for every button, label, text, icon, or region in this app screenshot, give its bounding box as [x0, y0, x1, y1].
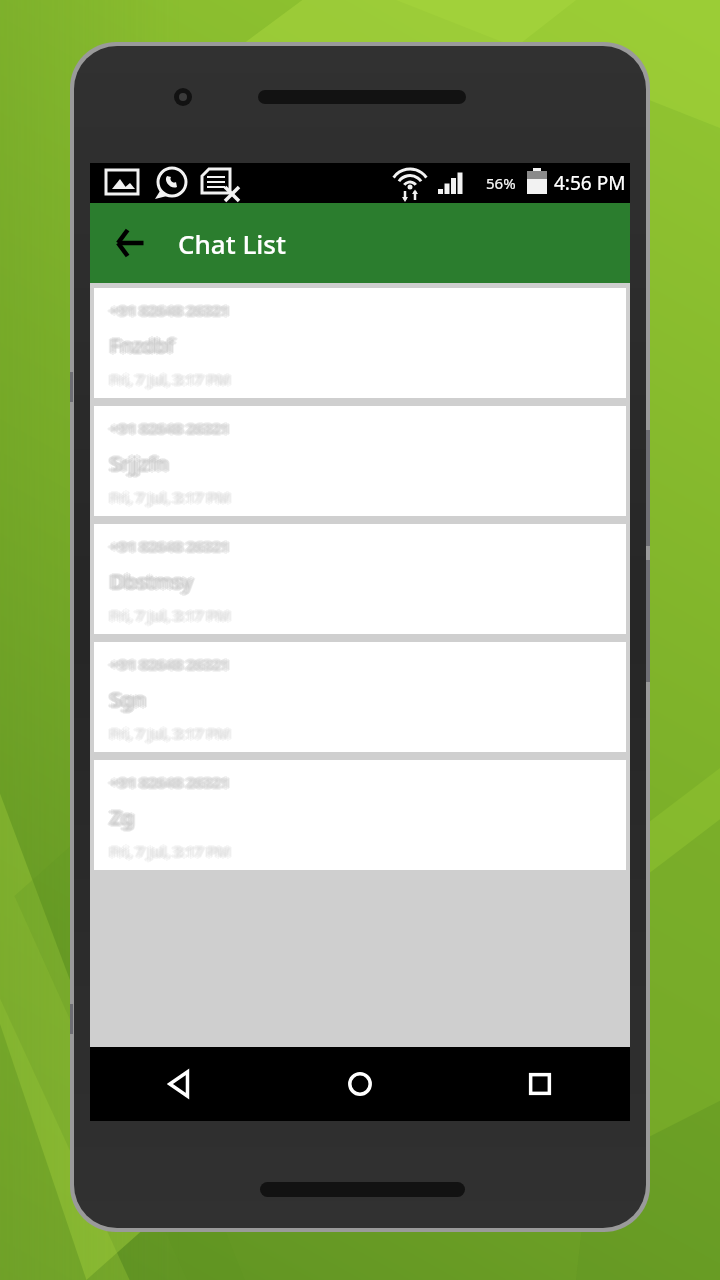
staticText: +91 82648 26321 [107, 536, 227, 556]
staticText: Fri, 7 Jul, 3:17 PM [107, 487, 227, 507]
button[interactable]: Home [270, 1047, 450, 1121]
staticText: +91 82648 26321 [108, 535, 228, 555]
staticText: Sgn [110, 686, 146, 713]
staticText: Fri, 7 Jul, 3:17 PM [110, 839, 230, 859]
staticText: +91 82648 26321 [112, 417, 232, 437]
staticText: +91 82648 26321 [110, 538, 230, 558]
staticText: Fri, 7 Jul, 3:17 PM [108, 606, 228, 626]
staticText: Chat List [178, 226, 286, 261]
staticText: +91 82648 26321 [108, 299, 228, 319]
staticText: +91 82648 26321 [107, 300, 227, 320]
staticText: Fri, 7 Jul, 3:17 PM [113, 487, 233, 507]
button[interactable]: Recents [450, 1047, 630, 1121]
staticText: +91 82648 26321 [108, 773, 228, 793]
staticText: Fri, 7 Jul, 3:17 PM [107, 723, 227, 743]
button[interactable]: +91 82648 26321 [94, 642, 626, 752]
staticText: Srjjzfn [108, 449, 167, 476]
staticText: Fri, 7 Jul, 3:17 PM [110, 723, 230, 743]
staticText: Fnzdbf [113, 332, 177, 359]
staticText: Zg [110, 806, 134, 833]
button[interactable]: +91 82648 26321 [94, 406, 626, 516]
staticText: Sgn [108, 687, 144, 714]
button[interactable]: +91 82648 26321 [94, 760, 626, 870]
staticText: +91 82648 26321 [108, 419, 228, 439]
staticText: Zg [112, 805, 136, 832]
staticText: Sgn [107, 686, 143, 713]
staticText: Zg [108, 803, 132, 830]
staticText: Fri, 7 Jul, 3:17 PM [112, 724, 232, 744]
staticText: Fri, 7 Jul, 3:17 PM [110, 605, 230, 625]
staticText: +91 82648 26321 [110, 772, 230, 792]
staticText: Fnzdbf [112, 333, 176, 360]
staticText: Fri, 7 Jul, 3:17 PM [110, 371, 230, 391]
staticText: Fri, 7 Jul, 3:17 PM [112, 606, 232, 626]
staticText: 56% [486, 173, 516, 193]
staticText: Fri, 7 Jul, 3:17 PM [110, 841, 230, 861]
staticText: Zg [107, 804, 131, 831]
staticText: Fri, 7 Jul, 3:17 PM [110, 367, 230, 387]
staticText: Fri, 7 Jul, 3:17 PM [112, 842, 232, 862]
staticText: 4:56 PM [554, 170, 626, 196]
staticText: +91 82648 26321 [108, 417, 228, 437]
staticText: +91 82648 26321 [110, 416, 230, 436]
staticText: Fri, 7 Jul, 3:17 PM [112, 368, 232, 388]
staticText: Srjjzfn [112, 451, 171, 478]
staticText: Fri, 7 Jul, 3:17 PM [107, 841, 227, 861]
staticText: Fri, 7 Jul, 3:17 PM [108, 722, 228, 742]
staticText: +91 82648 26321 [108, 653, 228, 673]
staticText: Fri, 7 Jul, 3:17 PM [108, 368, 228, 388]
staticText: +91 82648 26321 [110, 774, 230, 794]
staticText: Sgn [112, 687, 148, 714]
staticText: Fnzdbf [110, 330, 174, 357]
button[interactable]: +91 82648 26321 [94, 288, 626, 398]
staticText: +91 82648 26321 [110, 652, 230, 672]
staticText: Srjjzfn [110, 448, 169, 475]
staticText: Zg [108, 805, 132, 832]
staticText: Fri, 7 Jul, 3:17 PM [112, 486, 232, 506]
staticText: +91 82648 26321 [112, 535, 232, 555]
button[interactable]: Back [90, 1047, 270, 1121]
staticText: Srjjzfn [107, 450, 166, 477]
staticText: Zg [113, 804, 137, 831]
staticText: Fri, 7 Jul, 3:17 PM [108, 370, 228, 390]
staticText: Fri, 7 Jul, 3:17 PM [110, 721, 230, 741]
staticText: Srjjzfn [113, 450, 172, 477]
staticText: Fri, 7 Jul, 3:17 PM [113, 841, 233, 861]
staticText: Fri, 7 Jul, 3:17 PM [110, 485, 230, 505]
staticText: Fri, 7 Jul, 3:17 PM [108, 486, 228, 506]
staticText: +91 82648 26321 [107, 418, 227, 438]
staticText: Fri, 7 Jul, 3:17 PM [110, 487, 230, 507]
staticText: Fnzdbf [108, 331, 172, 358]
staticText: Zg [112, 803, 136, 830]
staticText: +91 82648 26321 [112, 773, 232, 793]
staticText: +91 82648 26321 [110, 302, 230, 322]
staticText: +91 82648 26321 [110, 418, 230, 438]
staticText: Fri, 7 Jul, 3:17 PM [110, 369, 230, 389]
staticText: +91 82648 26321 [112, 419, 232, 439]
staticText: Dbstmsy [108, 569, 191, 596]
staticText: +91 82648 26321 [110, 770, 230, 790]
staticText: Fri, 7 Jul, 3:17 PM [113, 723, 233, 743]
staticText: Dbstmsy [110, 570, 193, 597]
staticText: +91 82648 26321 [113, 654, 233, 674]
staticText: Fri, 7 Jul, 3:17 PM [112, 370, 232, 390]
staticText: +91 82648 26321 [113, 300, 233, 320]
staticText: +91 82648 26321 [110, 536, 230, 556]
staticText: Fri, 7 Jul, 3:17 PM [112, 840, 232, 860]
staticText: Dbstmsy [112, 569, 195, 596]
button[interactable]: Back [102, 215, 158, 271]
staticText: Fri, 7 Jul, 3:17 PM [113, 369, 233, 389]
staticText: Sgn [112, 685, 148, 712]
button[interactable]: +91 82648 26321 [94, 524, 626, 634]
staticText: Fri, 7 Jul, 3:17 PM [108, 840, 228, 860]
staticText: Fri, 7 Jul, 3:17 PM [112, 488, 232, 508]
staticText: Fri, 7 Jul, 3:17 PM [112, 604, 232, 624]
staticText: Fri, 7 Jul, 3:17 PM [112, 722, 232, 742]
staticText: Dbstmsy [107, 568, 190, 595]
staticText: Fri, 7 Jul, 3:17 PM [113, 605, 233, 625]
staticText: Srjjzfn [110, 450, 169, 477]
staticText: Fnzdbf [112, 331, 176, 358]
staticText: Fri, 7 Jul, 3:17 PM [107, 605, 227, 625]
staticText: +91 82648 26321 [112, 653, 232, 673]
staticText: +91 82648 26321 [112, 299, 232, 319]
